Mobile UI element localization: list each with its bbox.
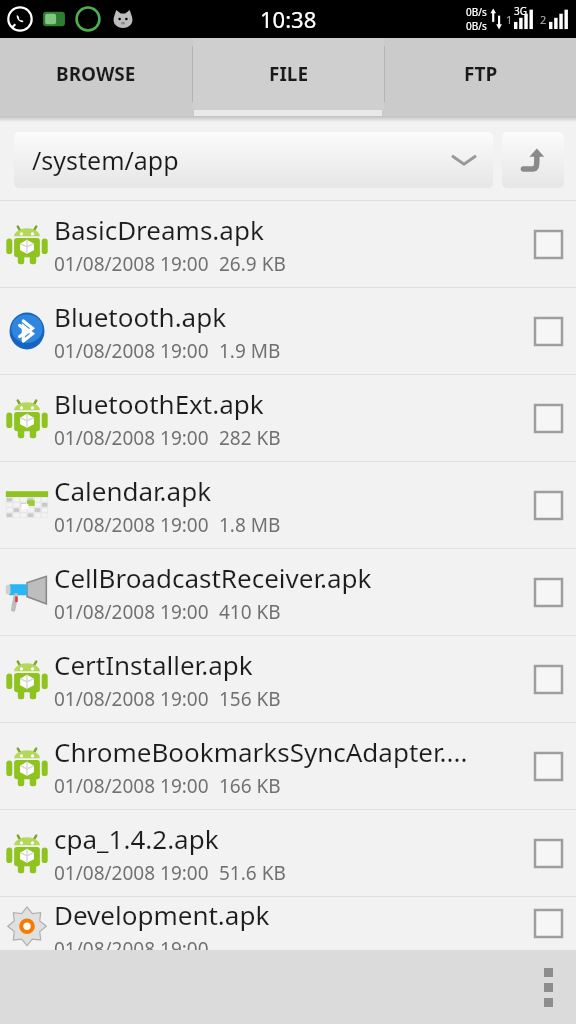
staticText: BasicDreams.apk (54, 212, 264, 247)
staticText: 51.6 KB (219, 860, 286, 886)
button[interactable]: Select Bluetooth.apk (520, 288, 576, 374)
button[interactable]: CertInstaller.apk (0, 636, 576, 722)
staticText: 3G (514, 4, 527, 18)
staticText: 01/08/2008 19:00 (54, 773, 209, 799)
staticText: Calendar.apk (54, 473, 212, 508)
staticText: Development.apk (54, 897, 270, 932)
staticText: 410 KB (219, 599, 281, 625)
button[interactable]: Select CertInstaller.apk (520, 636, 576, 722)
staticText: 01/08/2008 19:00 (54, 512, 209, 538)
button[interactable]: More options (520, 950, 576, 1024)
staticText: 01/08/2008 19:00 (54, 251, 209, 277)
button[interactable]: Up one level (502, 132, 564, 188)
button[interactable]: FTP (385, 38, 576, 110)
staticText: 166 KB (219, 773, 281, 799)
button[interactable]: BluetoothExt.apk (0, 375, 576, 461)
staticText: 2 (540, 12, 547, 27)
button[interactable]: Select ChromeBookmarksSyncAdapter.... (520, 723, 576, 809)
staticText: /system/app (32, 143, 453, 177)
staticText: 156 KB (219, 686, 281, 712)
button[interactable]: Select CellBroadcastReceiver.apk (520, 549, 576, 635)
staticText: 1.8 MB (219, 512, 281, 538)
staticText: 01/08/2008 19:00 (54, 425, 209, 451)
button[interactable]: CellBroadcastReceiver.apk (0, 549, 576, 635)
button[interactable]: BasicDreams.apk (0, 201, 576, 287)
staticText: FILE (269, 61, 309, 87)
button[interactable]: FILE (193, 38, 384, 110)
button[interactable]: cpa_1.4.2.apk (0, 810, 576, 896)
staticText: 1 (506, 12, 513, 27)
staticText: Bluetooth.apk (54, 299, 227, 334)
button[interactable]: Calendar.apk (0, 462, 576, 548)
button[interactable]: ChromeBookmarksSyncAdapter.... (0, 723, 576, 809)
staticText: 282 KB (219, 425, 281, 451)
button[interactable]: Select BasicDreams.apk (520, 201, 576, 287)
staticText: FTP (464, 61, 498, 87)
staticText: cpa_1.4.2.apk (54, 821, 219, 856)
staticText: 0B/s (466, 19, 487, 33)
button[interactable]: BROWSE (0, 38, 192, 110)
button[interactable]: Select Calendar.apk (520, 462, 576, 548)
staticText: ChromeBookmarksSyncAdapter.... (54, 734, 468, 769)
staticText: CertInstaller.apk (54, 647, 253, 682)
staticText: 01/08/2008 19:00 (54, 686, 209, 712)
staticText: 10:38 (260, 4, 317, 34)
button[interactable]: Select Development.apk (520, 897, 576, 950)
staticText: 01/08/2008 19:00 (54, 936, 209, 950)
button[interactable]: Bluetooth.apk (0, 288, 576, 374)
staticText: 1.9 MB (219, 338, 281, 364)
staticText: 01/08/2008 19:00 (54, 860, 209, 886)
staticText: 0B/s (466, 5, 487, 19)
button[interactable]: Development.apk (0, 897, 576, 950)
staticText: CellBroadcastReceiver.apk (54, 560, 372, 595)
staticText: 26.9 KB (219, 251, 286, 277)
staticText: 01/08/2008 19:00 (54, 338, 209, 364)
button[interactable]: /system/app (14, 132, 493, 188)
staticText: 01/08/2008 19:00 (54, 599, 209, 625)
staticText: BROWSE (56, 61, 136, 87)
button[interactable]: Select cpa_1.4.2.apk (520, 810, 576, 896)
staticText: BluetoothExt.apk (54, 386, 264, 421)
button[interactable]: Select BluetoothExt.apk (520, 375, 576, 461)
